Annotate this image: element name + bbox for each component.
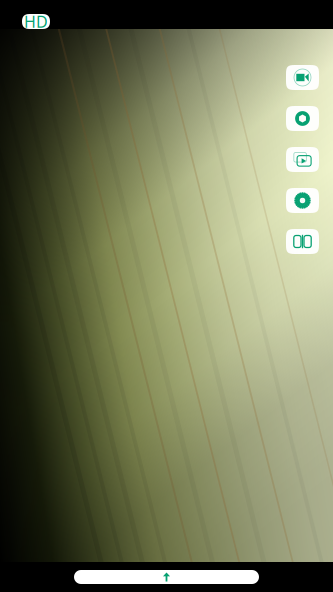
button[interactable]: Capture <box>286 106 319 131</box>
button[interactable]: Split view <box>286 229 319 254</box>
button[interactable]: Record video <box>286 65 319 90</box>
button[interactable]: Show controls <box>74 570 259 584</box>
staticText: HD <box>24 11 48 32</box>
button[interactable]: HD <box>22 14 50 29</box>
button[interactable]: Settings <box>286 188 319 213</box>
button[interactable]: Media library <box>286 147 319 172</box>
